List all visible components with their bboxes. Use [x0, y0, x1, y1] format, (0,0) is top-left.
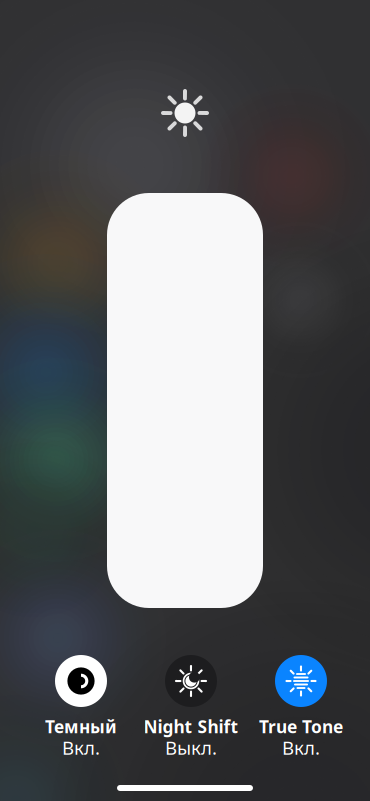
staticText: Выкл. — [165, 735, 217, 760]
staticText: Night Shift — [143, 715, 238, 738]
staticText: Вкл. — [62, 735, 100, 760]
button[interactable]: Night Shift — [136, 655, 246, 756]
button[interactable]: True Tone — [246, 655, 356, 756]
button[interactable]: Темный — [26, 655, 136, 756]
staticText: Вкл. — [282, 735, 320, 760]
staticText: True Tone — [259, 715, 343, 738]
staticText: Темный — [45, 715, 117, 738]
